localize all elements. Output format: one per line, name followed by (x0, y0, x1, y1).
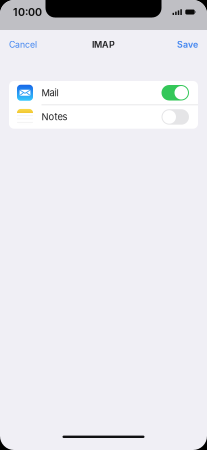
button[interactable]: Notes (9, 105, 198, 129)
staticText: Cancel (9, 39, 37, 50)
staticText: Notes (41, 111, 67, 123)
staticText: Mail (41, 87, 58, 98)
staticText: Save (177, 39, 198, 50)
button[interactable]: Save (168, 30, 207, 59)
button[interactable]: Cancel (0, 30, 46, 59)
staticText: 10:00 (13, 5, 42, 18)
staticText: IMAP (92, 39, 115, 50)
button[interactable]: Mail (9, 81, 198, 104)
